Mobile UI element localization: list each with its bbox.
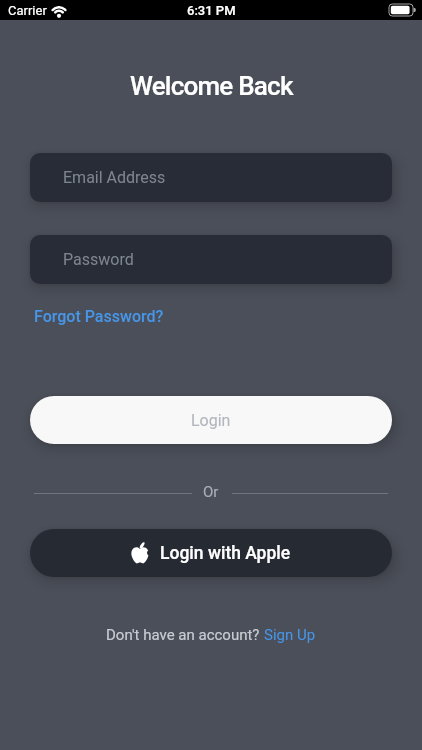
staticText: Forgot Password? xyxy=(34,307,164,326)
button[interactable]: Forgot Password? xyxy=(34,307,164,326)
button[interactable]: Login xyxy=(30,396,392,444)
staticText: Login xyxy=(191,411,231,430)
staticText: Don't have an account? xyxy=(106,626,264,644)
staticText: Password xyxy=(63,250,134,269)
button[interactable]: Password xyxy=(30,235,392,284)
button[interactable]: Email Address xyxy=(30,153,392,202)
staticText: Carrier xyxy=(8,3,47,18)
staticText: Login with Apple xyxy=(160,543,291,564)
staticText: Sign Up xyxy=(264,626,316,644)
button[interactable]: Sign Up xyxy=(264,626,316,644)
button[interactable]: Login with Apple xyxy=(30,529,392,577)
staticText: Welcome Back xyxy=(130,71,293,101)
staticText: Email Address xyxy=(63,168,166,187)
staticText: 6:31 PM xyxy=(187,3,236,18)
staticText: Or xyxy=(203,483,219,501)
